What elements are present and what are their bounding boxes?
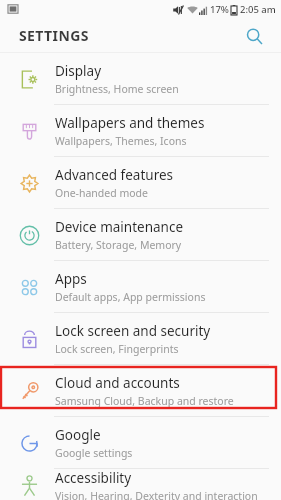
button[interactable]: Display	[0, 53, 281, 104]
staticText: Accessibility	[55, 469, 132, 487]
staticText: Default apps, App permissions	[55, 290, 206, 304]
button[interactable]: Search	[239, 21, 269, 51]
button[interactable]: Device maintenance	[0, 209, 281, 260]
staticText: Lock screen and security	[55, 322, 211, 340]
button[interactable]: Apps	[0, 261, 281, 312]
staticText: Samsung Cloud, Backup and restore	[55, 394, 234, 408]
staticText: Battery, Storage, Memory	[55, 238, 182, 252]
staticText: One-handed mode	[55, 186, 148, 200]
staticText: Apps	[55, 270, 87, 288]
staticText: Advanced features	[55, 166, 174, 184]
button[interactable]: Lock screen and security	[0, 313, 281, 364]
staticText: 2:05 am	[240, 3, 276, 16]
staticText: Google	[55, 426, 101, 444]
staticText: SETTINGS	[19, 26, 89, 45]
staticText: Vision, Hearing, Dexterity and interacti…	[55, 489, 258, 500]
staticText: Display	[55, 62, 102, 80]
staticText: Cloud and accounts	[55, 374, 180, 392]
staticText: Brightness, Home screen	[55, 82, 179, 96]
button[interactable]: Cloud and accounts	[0, 365, 281, 416]
button[interactable]: Advanced features	[0, 157, 281, 208]
staticText: 17%	[210, 3, 229, 16]
button[interactable]: Wallpapers and themes	[0, 105, 281, 156]
staticText: Device maintenance	[55, 218, 184, 236]
button[interactable]: Google	[0, 417, 281, 468]
staticText: Lock screen, Fingerprints	[55, 342, 179, 356]
staticText: Wallpapers and themes	[55, 114, 205, 132]
staticText: Wallpapers, Themes, Icons	[55, 134, 187, 148]
staticText: Google settings	[55, 446, 133, 460]
button[interactable]: Accessibility	[0, 469, 281, 500]
